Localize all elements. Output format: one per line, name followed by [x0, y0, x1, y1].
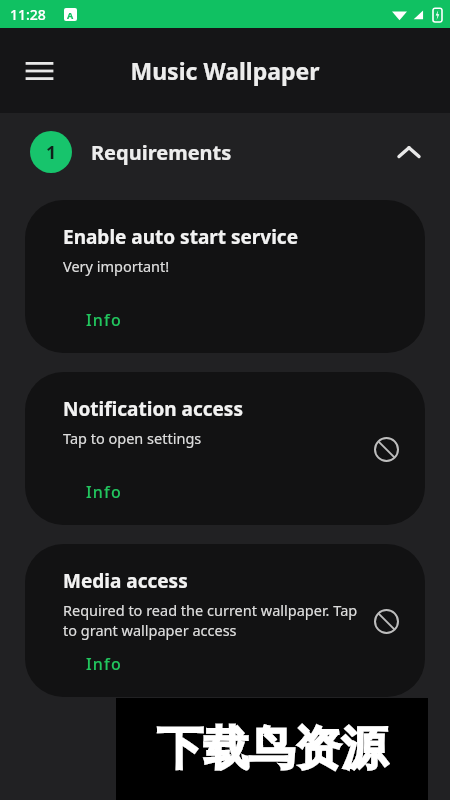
staticText: Enable auto start service	[63, 224, 299, 250]
button[interactable]: Enable auto start service	[25, 200, 425, 353]
button[interactable]: Open navigation menu	[21, 53, 57, 89]
staticText: Notification access	[63, 396, 243, 422]
staticText: Info	[86, 481, 122, 503]
staticText: Music Wallpaper	[130, 55, 320, 86]
button[interactable]: Info	[80, 303, 128, 337]
staticText: 下载鸟资源	[157, 720, 387, 778]
button[interactable]: Permission not granted	[369, 432, 403, 466]
staticText: Media access	[63, 568, 188, 594]
button[interactable]: Notification access	[25, 372, 425, 525]
button[interactable]: Info	[80, 475, 128, 509]
staticText: Tap to open settings	[63, 428, 202, 448]
other: Collapse section	[392, 135, 426, 169]
staticText: 1	[46, 140, 57, 165]
button[interactable]: Permission not granted	[369, 604, 403, 638]
staticText: 11:28	[10, 5, 46, 24]
button[interactable]: 1	[0, 113, 450, 191]
button[interactable]: Info	[80, 647, 128, 681]
staticText: Info	[86, 309, 122, 331]
staticText: Required to read the current wallpaper. …	[63, 600, 358, 640]
button[interactable]: Media access	[25, 544, 425, 697]
staticText: Very important!	[63, 256, 170, 276]
staticText: Info	[86, 653, 122, 675]
staticText: A	[67, 9, 74, 21]
staticText: Requirements	[91, 139, 232, 166]
